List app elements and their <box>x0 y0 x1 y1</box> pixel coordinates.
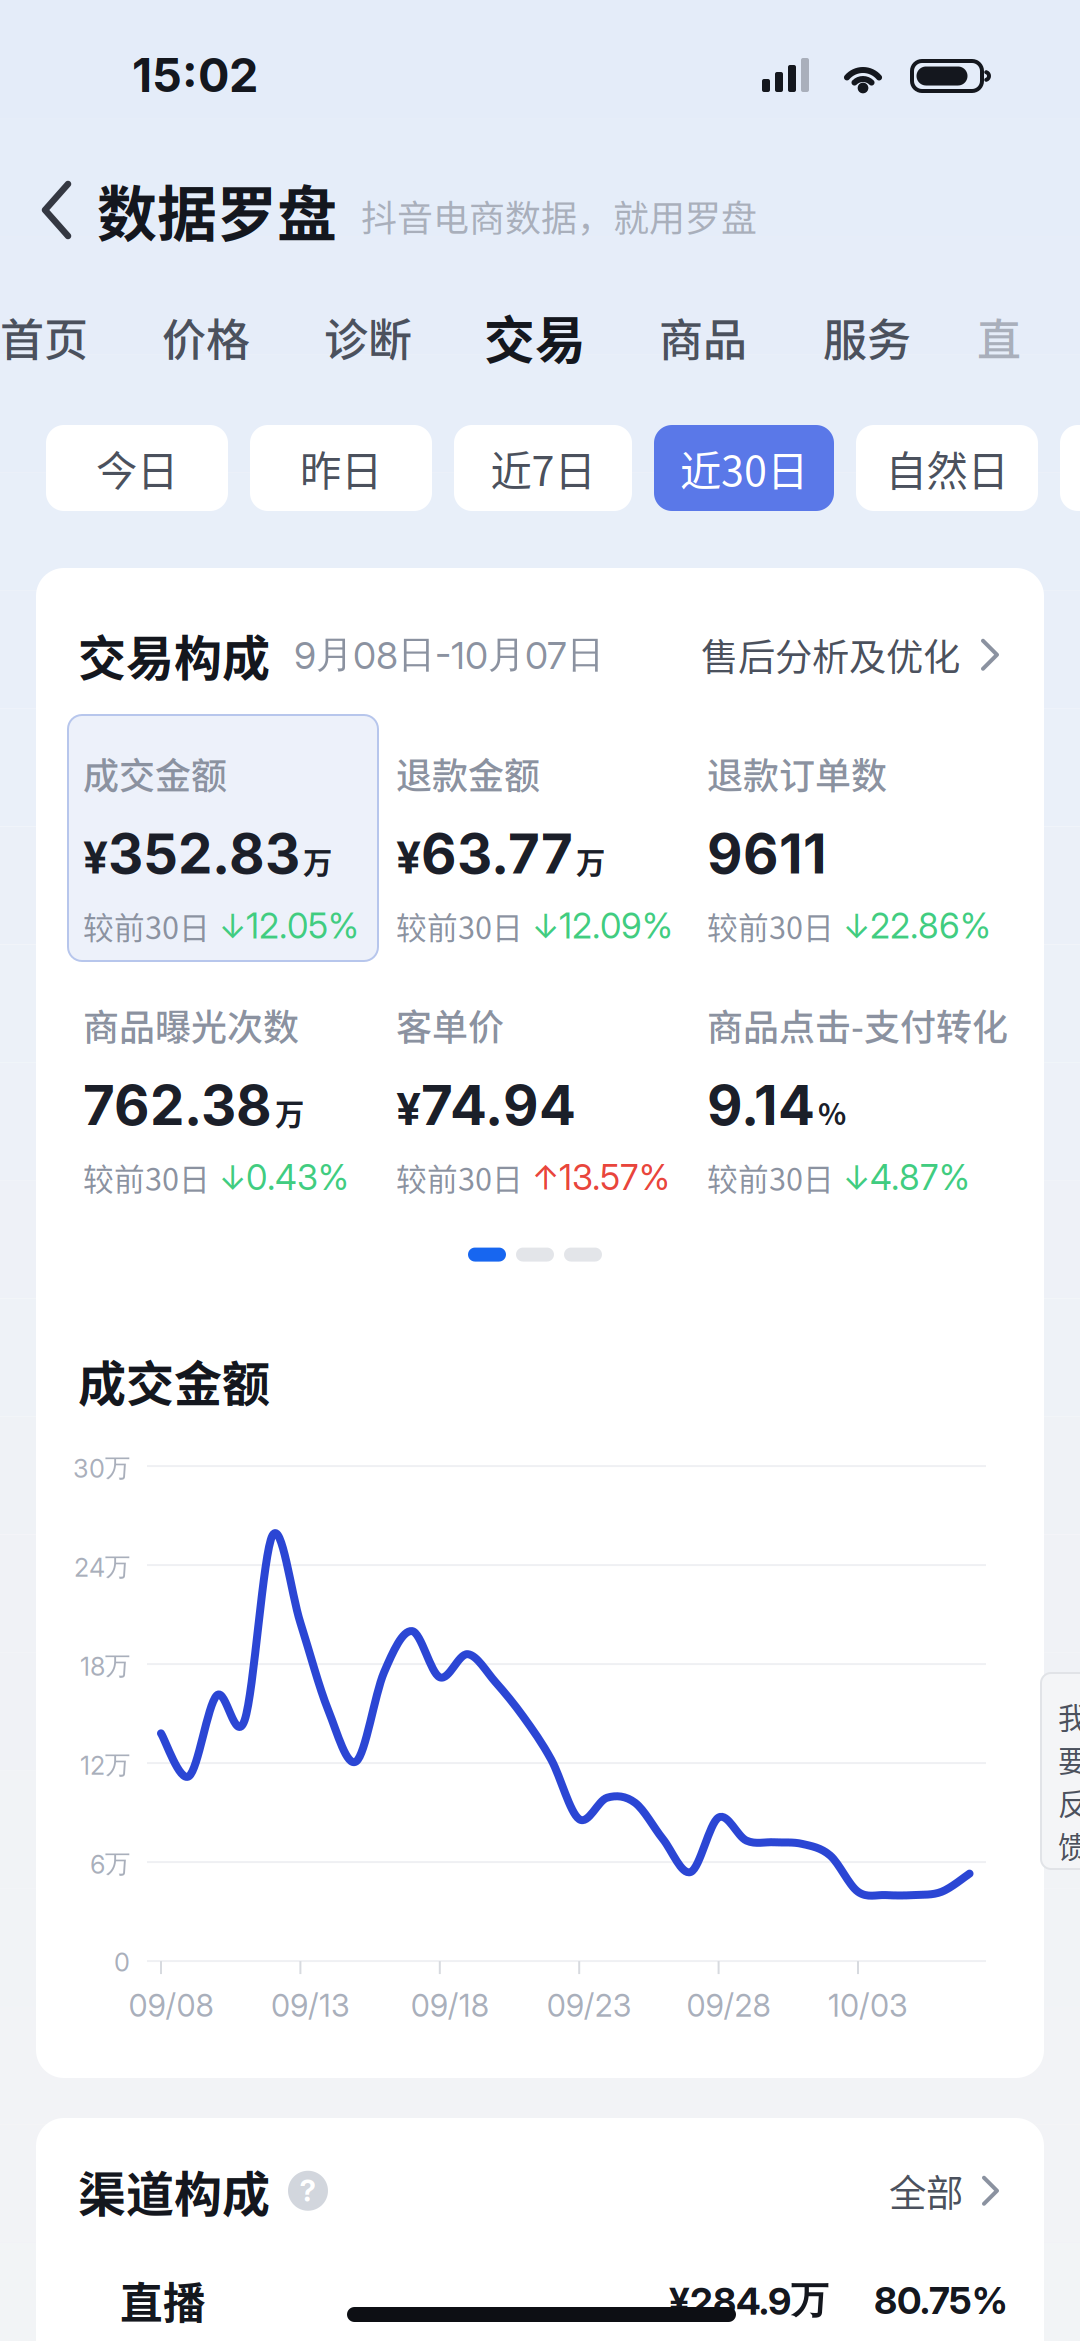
staticText: 成交金额 <box>83 747 227 800</box>
staticText: 18万 <box>80 1650 130 1682</box>
staticText: 0.43% <box>246 1156 349 1198</box>
button[interactable]: 直 <box>949 291 1049 383</box>
staticText: 09/28 <box>687 1987 771 2024</box>
button[interactable]: 售后分析及优化 <box>701 628 1002 682</box>
staticText: 15:02 <box>132 47 258 103</box>
staticText: 09/18 <box>411 1987 489 2024</box>
staticText: 商品曝光次数 <box>83 999 299 1051</box>
staticText: 22.86% <box>870 905 991 947</box>
staticText: 客单价 <box>396 999 504 1051</box>
staticText: 售后分析及优化 <box>701 628 960 682</box>
button[interactable]: 近30日 <box>654 425 834 511</box>
staticText: 近7日 <box>490 438 595 498</box>
button[interactable]: 返回 <box>22 174 97 246</box>
staticText: 万 <box>576 839 605 882</box>
staticText: 较前30日 <box>396 904 523 948</box>
staticText: 4.87% <box>870 1156 970 1198</box>
staticText: 抖音电商数据，就用罗盘 <box>361 190 757 242</box>
staticText: 较前30日 <box>707 1155 834 1200</box>
staticText: 80.75% <box>874 2278 1008 2323</box>
staticText: 09/23 <box>547 1987 632 2024</box>
staticText: 诊断 <box>324 305 412 369</box>
staticText: 13.57% <box>559 1156 670 1198</box>
staticText: 30万 <box>73 1452 130 1484</box>
staticText: 退款订单数 <box>707 747 887 800</box>
staticText: 直播 <box>120 2269 206 2331</box>
staticText: ¥ <box>396 1082 421 1136</box>
button[interactable]: 服务 <box>785 291 949 383</box>
staticText: 12万 <box>80 1749 130 1781</box>
button[interactable]: 诊断 <box>287 291 449 383</box>
staticText: 09/13 <box>271 1987 350 2024</box>
staticText: 商品点击-支付转化 <box>707 999 1008 1051</box>
staticText: 要 <box>1058 1738 1080 1780</box>
staticText: 交易构成 <box>78 620 270 689</box>
staticText: 价格 <box>162 305 250 369</box>
staticText: 交易 <box>484 300 586 374</box>
staticText: ↓ <box>834 906 870 946</box>
staticText: 09/08 <box>128 1987 213 2024</box>
staticText: 近30日 <box>680 438 808 498</box>
button[interactable]: 我要反馈 <box>1041 1673 1080 1869</box>
staticText: 自然日 <box>885 438 1008 498</box>
button[interactable]: 自然日 <box>856 425 1038 511</box>
staticText: 反 <box>1058 1781 1080 1823</box>
staticText: 商品 <box>659 305 747 369</box>
staticText: 万 <box>275 1091 304 1133</box>
button[interactable]: 价格 <box>125 291 287 383</box>
staticText: ↓ <box>210 1157 246 1197</box>
staticText: 12.05% <box>246 905 359 947</box>
staticText: ↑ <box>523 1157 559 1197</box>
staticText: 762.38 <box>83 1072 272 1138</box>
staticText: 9月08日-10月07日 <box>294 631 604 678</box>
button[interactable]: 首页 <box>0 291 125 383</box>
staticText: ↓ <box>834 1157 870 1197</box>
staticText: 较前30日 <box>83 904 210 948</box>
staticText: 全部 <box>889 2164 963 2218</box>
staticText: 今日 <box>96 438 178 498</box>
button[interactable]: 商品 <box>621 291 785 383</box>
button[interactable] <box>1060 425 1080 511</box>
staticText: 6万 <box>90 1848 130 1880</box>
staticText: ? <box>299 2173 316 2208</box>
staticText: 24万 <box>74 1551 130 1583</box>
staticText: 万 <box>303 839 332 882</box>
staticText: 较前30日 <box>707 904 834 948</box>
button[interactable]: 今日 <box>46 425 228 511</box>
staticText: 成交金额 <box>78 1346 270 1415</box>
staticText: 10/03 <box>828 1987 908 2024</box>
staticText: 昨日 <box>300 438 382 498</box>
staticText: 9611 <box>707 821 827 887</box>
staticText: 数据罗盘 <box>97 167 337 253</box>
staticText: 服务 <box>823 305 911 369</box>
staticText: 74.94 <box>421 1072 576 1138</box>
staticText: 63.77 <box>421 821 573 887</box>
staticText: 较前30日 <box>396 1155 523 1200</box>
button[interactable]: 昨日 <box>250 425 432 511</box>
staticText: 退款金额 <box>396 747 540 800</box>
staticText: ↓ <box>210 906 246 946</box>
button[interactable]: 近7日 <box>454 425 632 511</box>
staticText: ¥284.9万 <box>669 2277 828 2324</box>
staticText: 0 <box>114 1947 130 1978</box>
staticText: 馈 <box>1058 1824 1080 1866</box>
button[interactable]: 交易 <box>449 291 621 383</box>
staticText: 我 <box>1058 1695 1080 1737</box>
staticText: 352.83 <box>108 821 300 887</box>
staticText: % <box>818 1091 846 1133</box>
staticText: 9.14 <box>707 1072 815 1138</box>
staticText: 首页 <box>0 305 88 369</box>
staticText: 12.09% <box>559 905 673 947</box>
staticText: ↓ <box>523 906 559 946</box>
staticText: ¥ <box>83 831 108 884</box>
staticText: ¥ <box>396 831 421 884</box>
button[interactable]: 全部 <box>889 2164 1002 2218</box>
staticText: 渠道构成 <box>78 2156 270 2225</box>
staticText: 较前30日 <box>83 1155 210 1200</box>
staticText: 直 <box>977 305 1021 369</box>
